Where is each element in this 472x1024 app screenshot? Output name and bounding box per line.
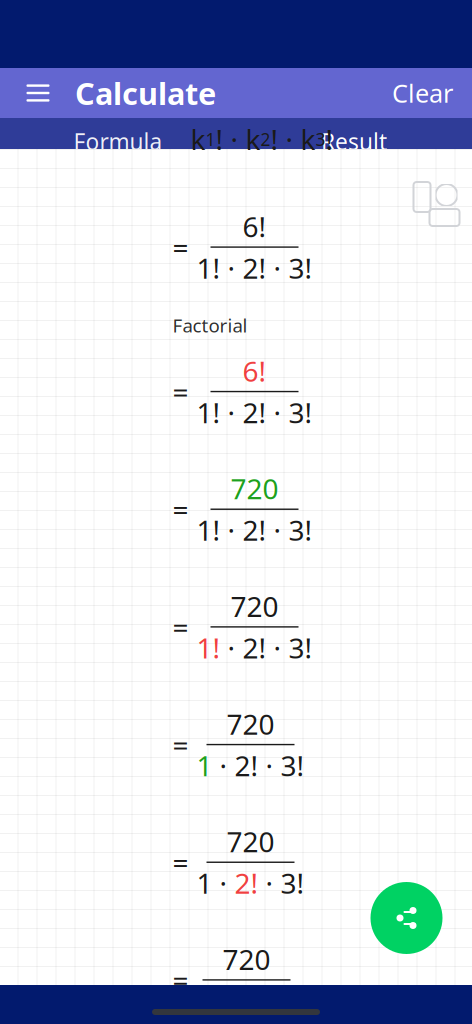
button[interactable]: Clear (378, 68, 467, 118)
staticText: · 3! (258, 864, 304, 902)
staticText: = (172, 228, 188, 266)
staticText: = (172, 608, 188, 646)
staticText: Clear (392, 76, 453, 110)
staticText: Factorial (172, 313, 247, 338)
staticText: 720 (222, 940, 270, 978)
staticText: 720 (226, 822, 274, 860)
button[interactable]: Result (236, 118, 472, 168)
staticText: Result (321, 126, 387, 156)
staticText: · 2! · 3! (212, 746, 304, 784)
staticText: = (172, 843, 188, 881)
staticText: ! · k (215, 120, 260, 158)
staticText: 6! (242, 207, 266, 245)
staticText: 6! (242, 352, 266, 390)
staticText: 720 (226, 705, 274, 743)
staticText: 1! (196, 629, 220, 667)
staticText: 1! · 2! · 3! (196, 393, 312, 431)
staticText: 1 · (196, 864, 234, 902)
staticText: = (172, 490, 188, 528)
button[interactable]: Share (370, 882, 442, 954)
button[interactable]: Formula (0, 118, 236, 168)
staticText: · 3! (250, 982, 296, 1020)
staticText: ! (325, 120, 333, 158)
staticText: = (172, 725, 188, 764)
staticText: 1! · 2! · 3! (196, 511, 312, 549)
staticText: 2 (260, 127, 270, 151)
staticText: 2 (234, 982, 250, 1020)
staticText: · 2! · 3! (220, 629, 312, 667)
staticText: Calculate (75, 73, 216, 113)
staticText: 720 (230, 587, 278, 625)
staticText: 2! (234, 864, 258, 902)
staticText: Formula (73, 126, 162, 156)
staticText: 720 (230, 469, 278, 507)
button[interactable]: Menu (18, 68, 58, 118)
staticText: k (190, 120, 205, 158)
staticText: 1! · 2! · 3! (196, 249, 312, 287)
staticText: 3 (315, 127, 325, 151)
staticText: = (172, 372, 188, 411)
staticText: 1 (205, 127, 215, 151)
staticText: 1 · (196, 982, 234, 1020)
staticText: = (172, 961, 188, 999)
staticText: ! · k (270, 120, 315, 158)
staticText: 1 (196, 746, 212, 784)
